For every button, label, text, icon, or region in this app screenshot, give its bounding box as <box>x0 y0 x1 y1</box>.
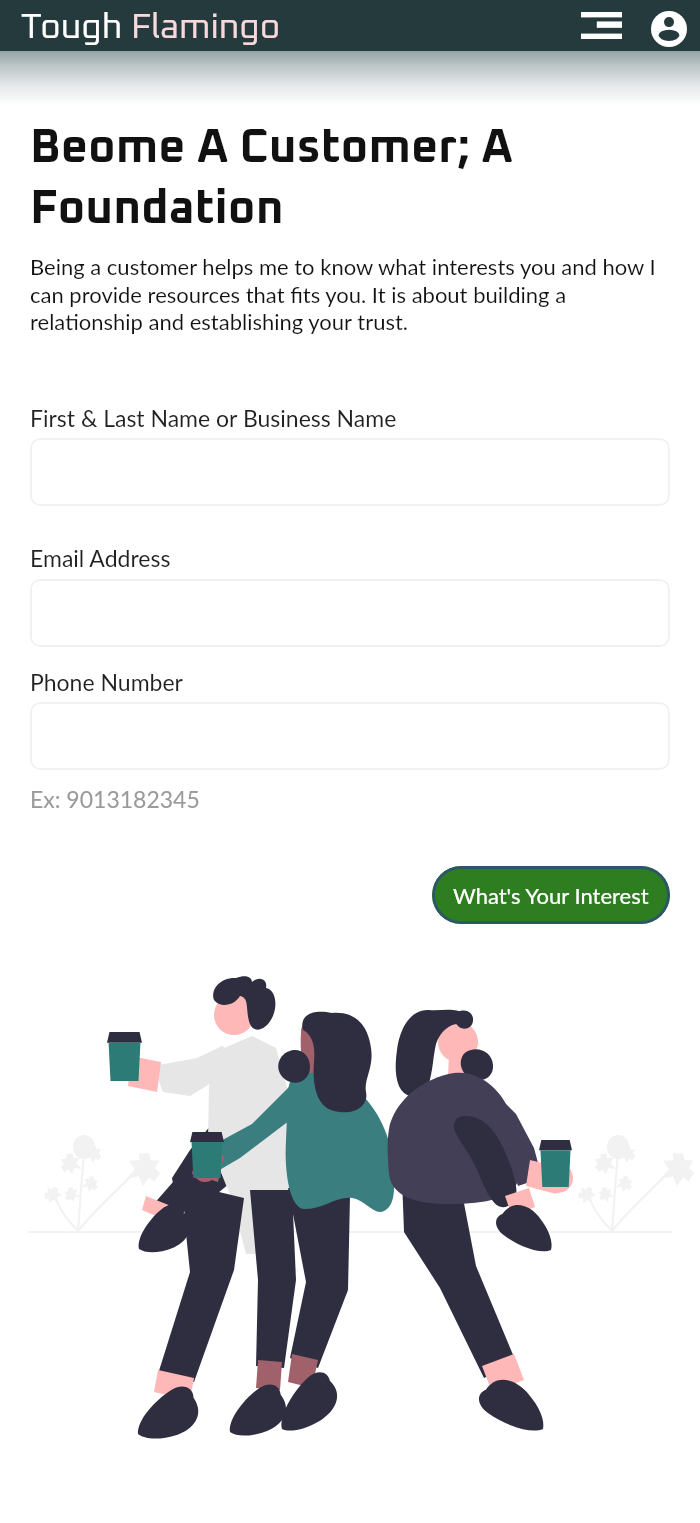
staticText: Phone Number <box>30 668 183 696</box>
staticText: Ex: 9013182345 <box>30 785 200 813</box>
staticText: What's Your Interest <box>453 882 649 908</box>
staticText: Being a customer helps me to know what i… <box>30 253 672 334</box>
staticText: First & Last Name or Business Name <box>30 404 397 432</box>
staticText: Flamingo <box>131 10 281 45</box>
button[interactable]: Menu <box>569 0 634 51</box>
button[interactable]: Account <box>641 0 693 51</box>
staticText: Beome A Customer; A Foundation <box>30 125 590 233</box>
staticText: Tough <box>21 10 131 45</box>
staticText: Email Address <box>30 544 171 572</box>
button[interactable] <box>30 702 670 770</box>
button[interactable] <box>30 438 670 506</box>
button[interactable]: Tough <box>21 10 281 45</box>
button[interactable] <box>30 579 670 647</box>
button[interactable]: What's Your Interest <box>432 866 670 924</box>
